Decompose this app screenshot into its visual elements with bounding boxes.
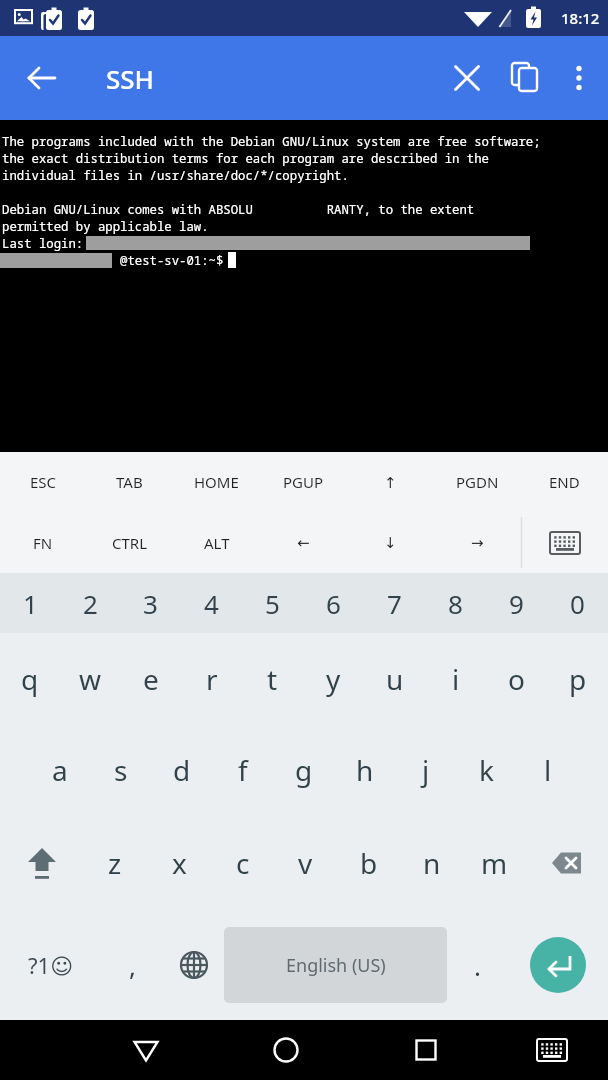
button[interactable]: z	[83, 815, 147, 910]
button[interactable]: 1	[0, 573, 60, 633]
button[interactable]: CTRL	[86, 512, 173, 573]
staticText: u	[386, 660, 404, 698]
button[interactable]: ,	[101, 910, 163, 1020]
button[interactable]: Shift	[0, 815, 83, 910]
button[interactable]: v	[274, 815, 337, 910]
button[interactable]: 4	[181, 573, 242, 633]
button[interactable]: x	[147, 815, 211, 910]
button[interactable]: PGDN	[434, 452, 521, 512]
button[interactable]: ?1☺	[0, 910, 101, 1020]
button[interactable]: Navigate up	[14, 50, 70, 106]
staticText: ALT	[204, 533, 230, 553]
button[interactable]: 5	[242, 573, 303, 633]
button[interactable]: Recent apps	[356, 1020, 496, 1080]
staticText: permitted by applicable law.	[2, 218, 209, 235]
staticText: w	[79, 660, 102, 698]
button[interactable]: q	[0, 633, 60, 724]
button[interactable]: w	[60, 633, 120, 724]
staticText: HOME	[194, 472, 239, 492]
button[interactable]: f	[212, 724, 273, 815]
button[interactable]: TAB	[86, 452, 173, 512]
button[interactable]: 7	[364, 573, 425, 633]
staticText: ESC	[30, 472, 57, 492]
button[interactable]: 9	[486, 573, 547, 633]
button[interactable]: t	[242, 633, 303, 724]
button[interactable]: g	[273, 724, 334, 815]
button[interactable]: Change language	[163, 910, 224, 1020]
staticText: p	[569, 660, 587, 698]
staticText: CTRL	[112, 533, 148, 553]
staticText: 9	[509, 586, 524, 621]
button[interactable]: Hide extra keys	[543, 521, 587, 565]
button[interactable]: a	[30, 724, 90, 815]
button[interactable]: i	[425, 633, 486, 724]
button[interactable]: o	[486, 633, 547, 724]
staticText: TAB	[116, 472, 143, 492]
staticText: i	[452, 660, 460, 698]
button[interactable]: l	[517, 724, 578, 815]
staticText: SSH	[106, 61, 155, 96]
button[interactable]: Switch keyboard	[496, 1020, 608, 1080]
button[interactable]: ↓	[347, 512, 434, 573]
staticText: 7	[387, 586, 402, 621]
button[interactable]: c	[211, 815, 274, 910]
staticText: y	[326, 660, 341, 698]
button[interactable]: 3	[120, 573, 181, 633]
button[interactable]: HOME	[173, 452, 260, 512]
button[interactable]: PGUP	[260, 452, 347, 512]
staticText: a	[52, 751, 68, 789]
button[interactable]: Disconnect	[438, 49, 496, 107]
button[interactable]: English (US)	[224, 927, 447, 1003]
staticText: 5	[265, 586, 280, 621]
button[interactable]: ESC	[0, 452, 86, 512]
button[interactable]: j	[395, 724, 456, 815]
staticText: e	[143, 660, 159, 698]
staticText: ↓	[384, 534, 397, 551]
button[interactable]: p	[547, 633, 608, 724]
staticText: PGDN	[456, 472, 499, 492]
staticText: l	[544, 751, 552, 789]
button[interactable]: More options	[554, 53, 604, 103]
staticText: c	[236, 844, 250, 882]
button[interactable]: →	[434, 512, 521, 573]
button[interactable]: ALT	[173, 512, 260, 573]
staticText: →	[471, 534, 484, 551]
staticText: m	[481, 844, 508, 882]
button[interactable]: b	[337, 815, 400, 910]
button[interactable]: e	[120, 633, 181, 724]
button[interactable]: .	[447, 910, 508, 1020]
button[interactable]: m	[463, 815, 526, 910]
staticText: 8	[448, 586, 463, 621]
button[interactable]: Enter	[508, 910, 608, 1020]
staticText: s	[114, 751, 128, 789]
staticText: 2	[83, 586, 98, 621]
button[interactable]: ←	[260, 512, 347, 573]
button[interactable]: Backspace	[526, 815, 608, 910]
button[interactable]: Home	[216, 1020, 356, 1080]
staticText: 4	[204, 586, 219, 621]
button[interactable]: 2	[60, 573, 120, 633]
button[interactable]: FN	[0, 512, 86, 573]
button[interactable]: 0	[547, 573, 608, 633]
button[interactable]: k	[456, 724, 517, 815]
button[interactable]: n	[400, 815, 463, 910]
staticText: k	[479, 751, 494, 789]
staticText: ?1☺	[28, 950, 74, 980]
button[interactable]: y	[303, 633, 364, 724]
staticText: v	[298, 844, 313, 882]
staticText: ↑	[384, 474, 397, 491]
button[interactable]: s	[90, 724, 151, 815]
button[interactable]: d	[151, 724, 212, 815]
button[interactable]: 6	[303, 573, 364, 633]
button[interactable]: END	[521, 452, 608, 512]
staticText: the exact distribution terms for each pr…	[2, 150, 489, 167]
button[interactable]: u	[364, 633, 425, 724]
button[interactable]: 8	[425, 573, 486, 633]
button[interactable]: h	[334, 724, 395, 815]
button[interactable]: Back	[76, 1020, 216, 1080]
button[interactable]: Sessions	[496, 49, 554, 107]
button[interactable]: r	[181, 633, 242, 724]
button[interactable]: ↑	[347, 452, 434, 512]
staticText: o	[508, 660, 525, 698]
staticText: 6	[326, 586, 341, 621]
